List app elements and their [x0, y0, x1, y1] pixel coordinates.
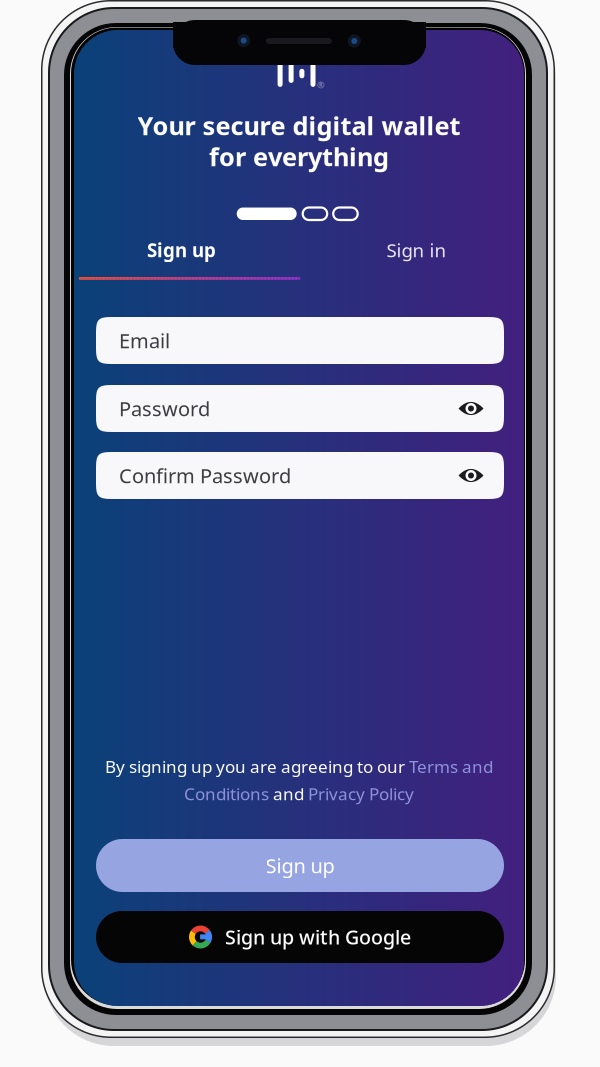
- button[interactable]: Sign up: [74, 234, 289, 266]
- staticText: ®: [317, 78, 325, 91]
- staticText: Email: [119, 327, 170, 354]
- staticText: Sign up with Google: [225, 924, 411, 950]
- button[interactable]: Sign in: [305, 234, 528, 266]
- button[interactable]: Conditions: [184, 782, 269, 805]
- staticText: Sign up: [265, 852, 334, 879]
- button[interactable]: Confirm Password: [96, 452, 504, 499]
- staticText: Your secure digital wallet: [137, 108, 460, 143]
- staticText: Sign in: [386, 237, 446, 263]
- staticText: Sign up: [147, 237, 216, 263]
- button[interactable]: Privacy Policy: [308, 782, 414, 805]
- staticText: Privacy Policy: [308, 782, 414, 805]
- staticText: Password: [119, 395, 210, 422]
- staticText: and: [269, 782, 308, 805]
- button[interactable]: Sign up: [96, 839, 504, 892]
- button[interactable]: Email: [96, 317, 504, 364]
- staticText: By signing up you are agreeing to our: [105, 755, 409, 778]
- staticText: Terms and: [409, 755, 493, 778]
- button[interactable]: Password: [96, 385, 504, 432]
- staticText: for everything: [209, 139, 389, 174]
- staticText: Confirm Password: [119, 462, 291, 489]
- staticText: Conditions: [184, 782, 269, 805]
- button[interactable]: Terms and: [409, 755, 493, 778]
- button[interactable]: Sign up with Google: [96, 911, 504, 963]
